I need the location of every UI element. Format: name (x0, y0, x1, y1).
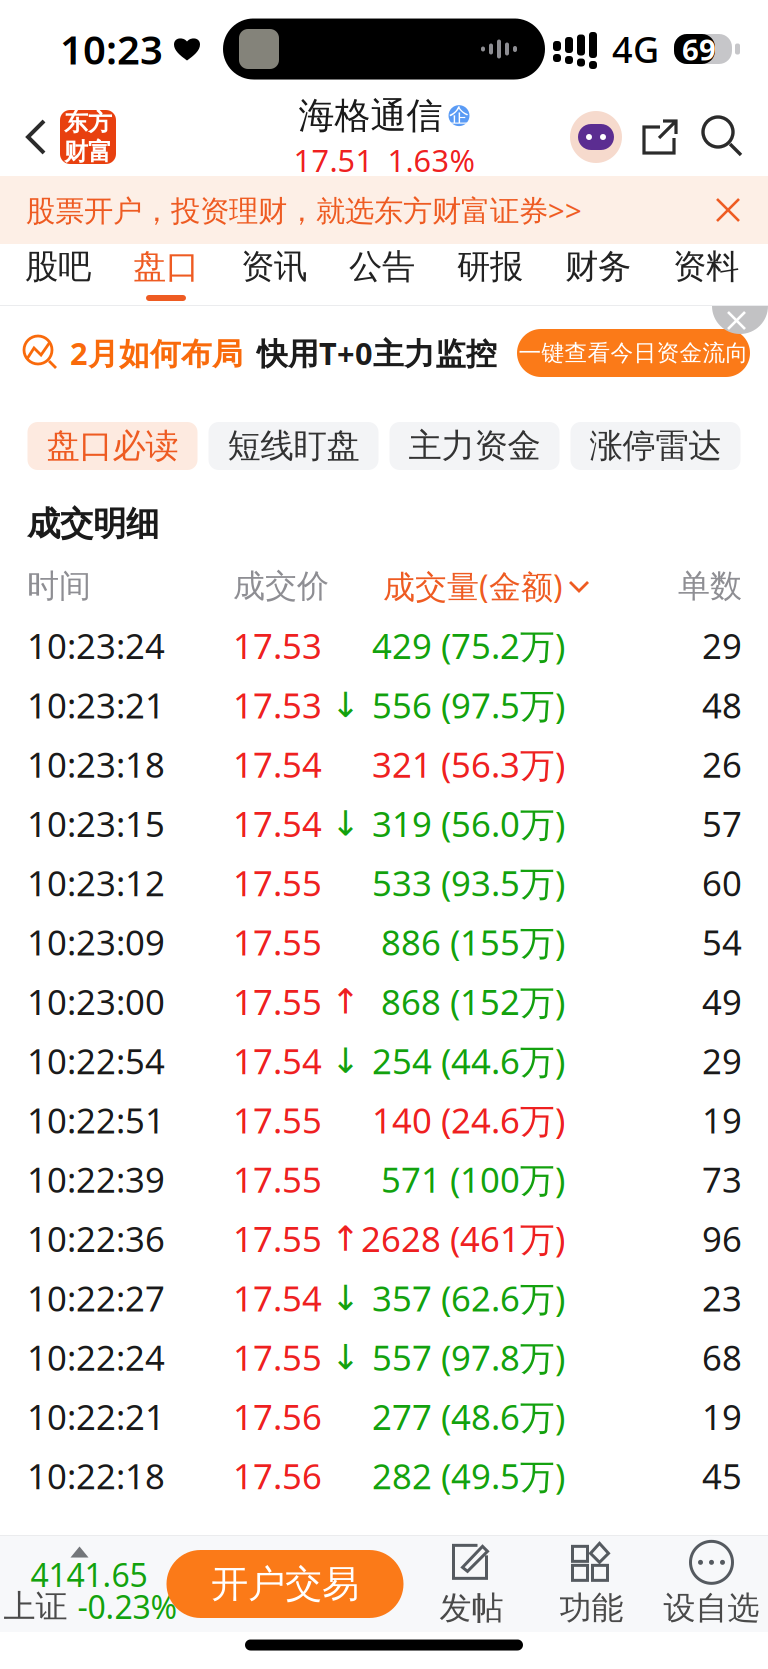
staticText: 盘口必读 (46, 425, 178, 466)
staticText: 开户交易 (211, 1561, 359, 1607)
staticText: 886 (155万) (381, 919, 565, 965)
button[interactable]: 关闭 (712, 306, 768, 335)
staticText: 10:22:18 (27, 1453, 165, 1499)
staticText: 上证 (3, 1587, 67, 1626)
staticText: 成交量(金额) (383, 565, 563, 607)
staticText: 140 (24.6万) (372, 1097, 565, 1143)
staticText: 96 (702, 1216, 742, 1262)
button[interactable]: 主力资金 (389, 422, 559, 470)
staticText: 23 (702, 1275, 742, 1321)
button[interactable]: 返回 (12, 98, 60, 176)
staticText: ↓ (331, 804, 360, 843)
staticText: 企 (449, 103, 469, 128)
staticText: 26 (702, 741, 742, 787)
button[interactable]: 盘口必读 (27, 422, 197, 470)
staticText: ↓ (331, 1278, 360, 1318)
staticText: 10:23:15 (27, 800, 165, 846)
button[interactable]: 股吧 (4, 244, 112, 305)
button[interactable]: 资料 (652, 244, 760, 305)
staticText: 556 (97.5万) (372, 682, 565, 728)
button[interactable]: 客服 (564, 98, 628, 176)
staticText: 17.55 (233, 978, 322, 1024)
staticText: 设自选 (663, 1588, 759, 1628)
staticText: 10:23 (60, 22, 163, 75)
staticText: 17.55 (233, 1156, 322, 1202)
staticText: 17.56 (233, 1393, 322, 1439)
staticText: ↓ (331, 1041, 360, 1080)
staticText: 17.53 (233, 682, 322, 728)
staticText: 277 (48.6万) (372, 1393, 565, 1439)
staticText: 357 (62.6万) (372, 1275, 565, 1321)
staticText: 29 (702, 623, 742, 669)
button[interactable]: 分享 (628, 98, 692, 176)
staticText: 868 (152万) (381, 978, 565, 1024)
staticText: 研报 (457, 246, 523, 287)
staticText: 10:22:24 (27, 1334, 165, 1380)
staticText: 功能 (559, 1588, 623, 1628)
staticText: 海格通信 (298, 93, 442, 138)
staticText: 17.51 (293, 140, 373, 180)
staticText: 主力资金 (408, 425, 540, 466)
staticText: 48 (702, 682, 742, 728)
button[interactable]: 发帖 (411, 1538, 531, 1630)
staticText: ↓ (331, 685, 360, 725)
staticText: 公告 (349, 246, 415, 287)
staticText: 69 (682, 29, 716, 68)
button[interactable]: 东方 (60, 110, 116, 164)
button[interactable]: 搜索 (692, 98, 754, 176)
staticText: 4141.65 (30, 1553, 147, 1596)
staticText: 54 (702, 919, 742, 965)
button[interactable]: 财务 (544, 244, 652, 305)
staticText: 财富 (64, 137, 112, 166)
staticText: 10:23:24 (27, 623, 165, 669)
staticText: 17.55 (233, 860, 322, 906)
button[interactable]: 涨停雷达 (570, 422, 740, 470)
staticText: 17.55 (233, 1216, 322, 1262)
staticText: 19 (702, 1393, 742, 1439)
staticText: 股票开户，投资理财，就选东方财富证券>> (26, 190, 582, 229)
staticText: 一键查看今日资金流向 (518, 339, 748, 367)
staticText: 10:23:18 (27, 741, 165, 787)
staticText: 涨停雷达 (589, 425, 721, 466)
button[interactable]: 开户交易 (166, 1550, 403, 1618)
button[interactable]: 公告 (328, 244, 436, 305)
button[interactable]: 短线盯盘 (208, 422, 378, 470)
staticText: 282 (49.5万) (372, 1453, 565, 1499)
staticText: 429 (75.2万) (372, 623, 565, 669)
staticText: 49 (702, 978, 742, 1024)
button[interactable]: 成交量(金额) (373, 566, 590, 606)
button[interactable]: 盘口 (112, 244, 220, 305)
staticText: -0.23% (77, 1585, 177, 1628)
staticText: 17.53 (233, 623, 322, 669)
button[interactable]: 股票开户，投资理财，就选东方财富证券>> (0, 176, 768, 244)
staticText: 571 (100万) (381, 1156, 565, 1202)
staticText: 短线盯盘 (227, 425, 359, 466)
staticText: 10:23:09 (27, 919, 165, 965)
staticText: 盘口 (133, 246, 199, 287)
button[interactable]: 设自选 (651, 1538, 768, 1630)
staticText: 10:22:51 (27, 1097, 165, 1143)
staticText: 10:22:21 (27, 1393, 165, 1439)
staticText: 资料 (673, 246, 739, 287)
staticText: 成交价 (233, 566, 329, 606)
staticText: 17.54 (233, 741, 322, 787)
staticText: 单数 (678, 566, 742, 606)
staticText: 1.63% (387, 140, 474, 180)
button[interactable]: 2月如何布局 (0, 306, 768, 400)
staticText: 17.54 (233, 1275, 322, 1321)
staticText: 68 (702, 1334, 742, 1380)
button[interactable]: 研报 (436, 244, 544, 305)
staticText: 财务 (565, 246, 631, 287)
button[interactable]: 资讯 (220, 244, 328, 305)
staticText: 17.54 (233, 1038, 322, 1084)
button[interactable]: 4141.65 (14, 1539, 166, 1629)
staticText: 成交明细 (27, 503, 159, 544)
staticText: 321 (56.3万) (372, 741, 565, 787)
staticText: 资讯 (241, 246, 307, 287)
staticText: ↓ (331, 1338, 360, 1377)
staticText: 533 (93.5万) (372, 860, 565, 906)
button[interactable]: 功能 (531, 1538, 651, 1630)
staticText: 东方 (64, 107, 112, 137)
staticText: 17.55 (233, 1334, 322, 1380)
staticText: 60 (702, 860, 742, 906)
